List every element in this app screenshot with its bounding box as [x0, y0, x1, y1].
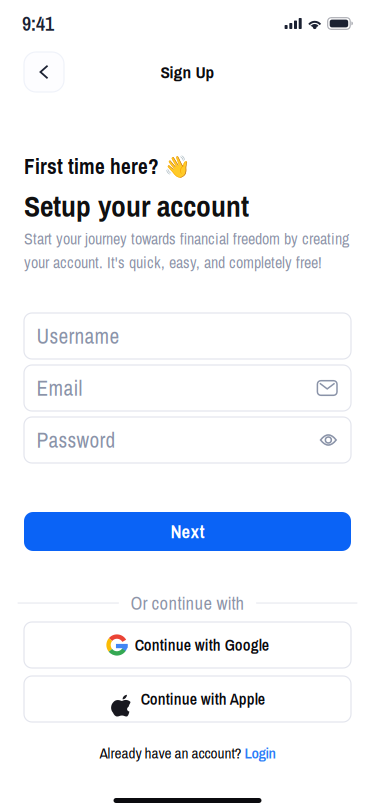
- staticText: 9:41: [22, 10, 54, 37]
- staticText: Sign Up: [160, 60, 214, 84]
- staticText: Or continue with: [130, 590, 244, 615]
- staticText: First time here? 👋: [24, 152, 191, 181]
- button[interactable]: Already have an account?: [24, 742, 351, 764]
- staticText: Next: [170, 519, 204, 544]
- button[interactable]: Next: [24, 512, 351, 551]
- staticText: Password: [36, 426, 115, 454]
- staticText: Already have an account?: [99, 743, 244, 763]
- button[interactable]: Back: [24, 52, 64, 92]
- staticText: Username: [36, 322, 119, 350]
- button[interactable]: Continue with Apple: [24, 676, 351, 722]
- staticText: Setup your account: [24, 186, 249, 226]
- staticText: Continue with Apple: [141, 688, 265, 710]
- button[interactable]: Continue with Google: [24, 622, 351, 668]
- staticText: Start your journey towards financial fre…: [24, 228, 349, 273]
- staticText: Login: [244, 743, 275, 763]
- staticText: Email: [36, 374, 82, 402]
- staticText: Continue with Google: [135, 634, 269, 656]
